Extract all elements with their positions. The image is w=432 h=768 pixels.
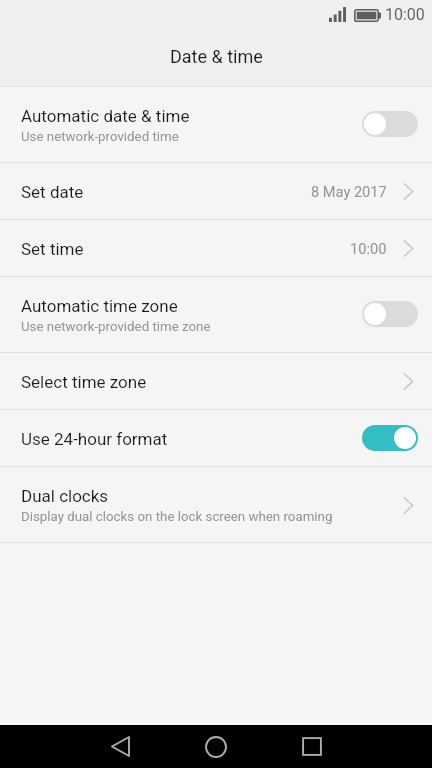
button[interactable]: Automatic date & time bbox=[0, 87, 432, 163]
staticText: Display dual clocks on the lock screen w… bbox=[21, 509, 333, 525]
button[interactable]: Automatic time zone bbox=[0, 277, 432, 353]
button[interactable]: Set date bbox=[0, 163, 432, 220]
staticText: Use 24-hour format bbox=[21, 429, 362, 449]
staticText: Select time zone bbox=[21, 372, 400, 392]
staticText: Dual clocks bbox=[21, 486, 109, 506]
button[interactable]: Use 24-hour format bbox=[0, 410, 432, 467]
button[interactable]: Automatic time zone off bbox=[362, 301, 418, 327]
button[interactable]: Dual clocks bbox=[0, 467, 432, 543]
button[interactable]: Automatic date & time off bbox=[362, 111, 418, 137]
staticText: Use network-provided time bbox=[21, 129, 179, 145]
button[interactable]: Recents bbox=[286, 725, 338, 768]
staticText: Automatic time zone bbox=[21, 296, 178, 316]
staticText: Set time bbox=[21, 239, 350, 259]
staticText: 10:00 bbox=[350, 240, 387, 257]
button[interactable]: Use 24-hour format on bbox=[362, 425, 418, 451]
staticText: 10:00 bbox=[385, 5, 425, 24]
staticText: Date & time bbox=[170, 46, 263, 67]
staticText: Set date bbox=[21, 182, 311, 202]
staticText: 8 May 2017 bbox=[311, 183, 387, 200]
staticText: Automatic date & time bbox=[21, 106, 190, 126]
button[interactable]: Back bbox=[94, 725, 146, 768]
staticText: Use network-provided time zone bbox=[21, 319, 211, 335]
button[interactable]: Select time zone bbox=[0, 353, 432, 410]
button[interactable]: Set time bbox=[0, 220, 432, 277]
button[interactable]: Home bbox=[190, 725, 242, 768]
